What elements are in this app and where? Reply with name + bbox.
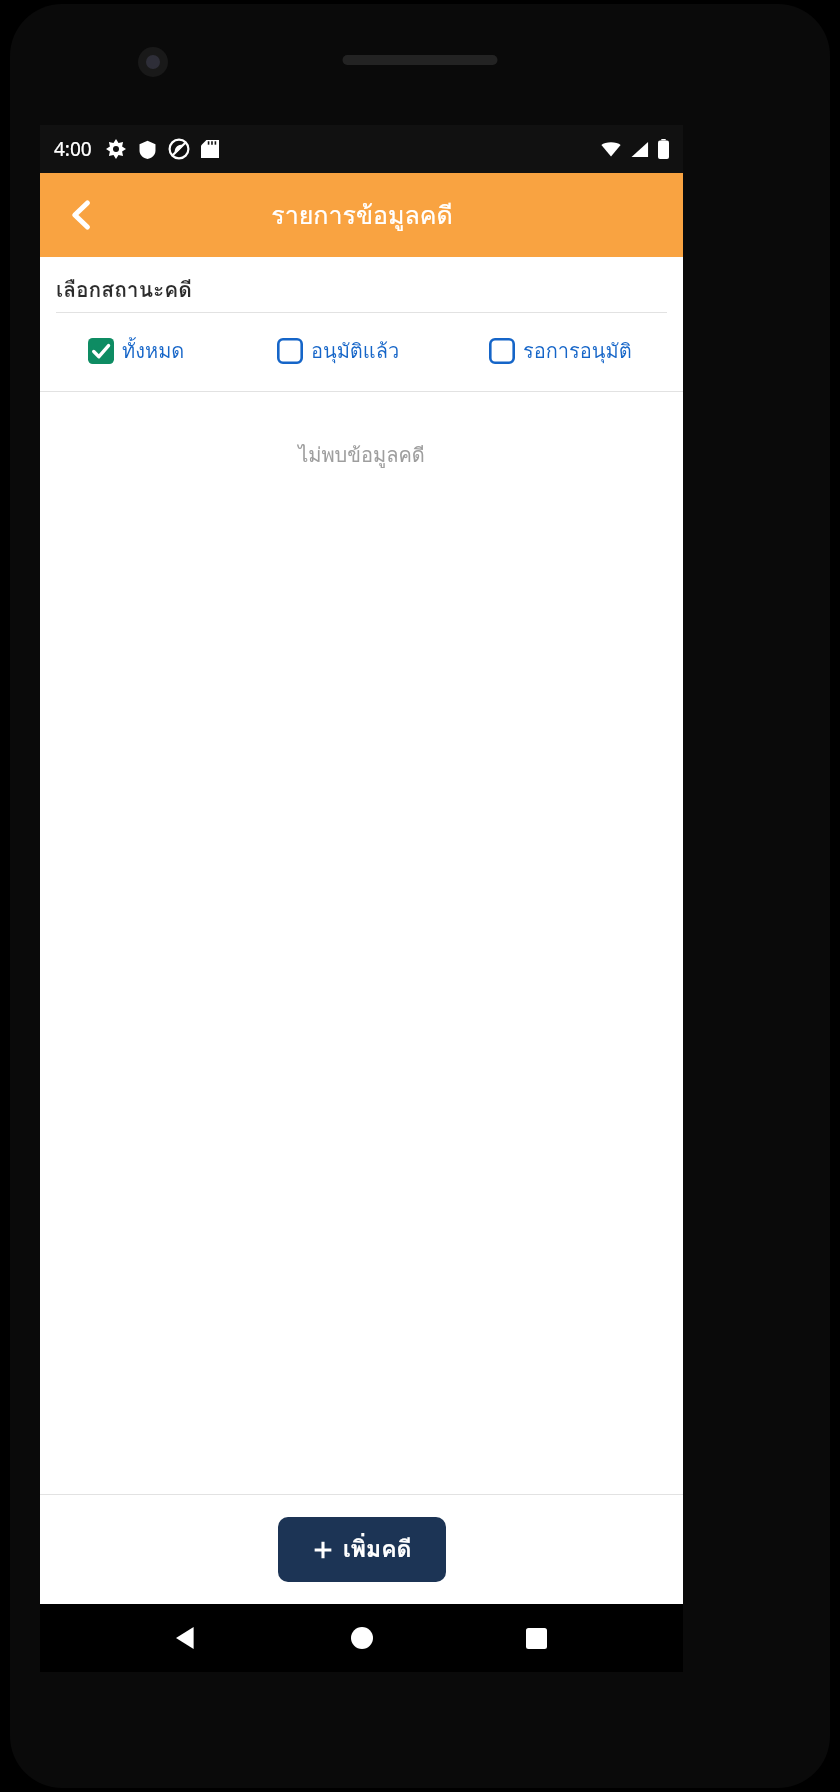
button[interactable]: เพิ่มคดี xyxy=(278,1517,446,1582)
staticText: เลือกสถานะคดี xyxy=(56,273,192,306)
staticText: 4:00 xyxy=(54,136,92,162)
staticText: อนุมัติแล้ว xyxy=(311,335,400,367)
button[interactable]: ทั้งหมด xyxy=(40,331,255,371)
staticText: รอการอนุมัติ xyxy=(523,335,632,367)
button[interactable]: Recent apps xyxy=(508,1610,564,1666)
button[interactable]: Back xyxy=(54,187,110,243)
staticText: เพิ่มคดี xyxy=(343,1531,412,1568)
staticText: ไม่พบข้อมูลคดี xyxy=(298,439,425,471)
button[interactable]: รอการอนุมัติ xyxy=(469,331,683,371)
button[interactable]: อนุมัติแล้ว xyxy=(255,331,469,371)
button[interactable]: Home xyxy=(334,1610,390,1666)
staticText: รายการข้อมูลคดี xyxy=(271,195,453,235)
staticText: ทั้งหมด xyxy=(122,335,185,367)
button[interactable]: Back xyxy=(159,1610,215,1666)
